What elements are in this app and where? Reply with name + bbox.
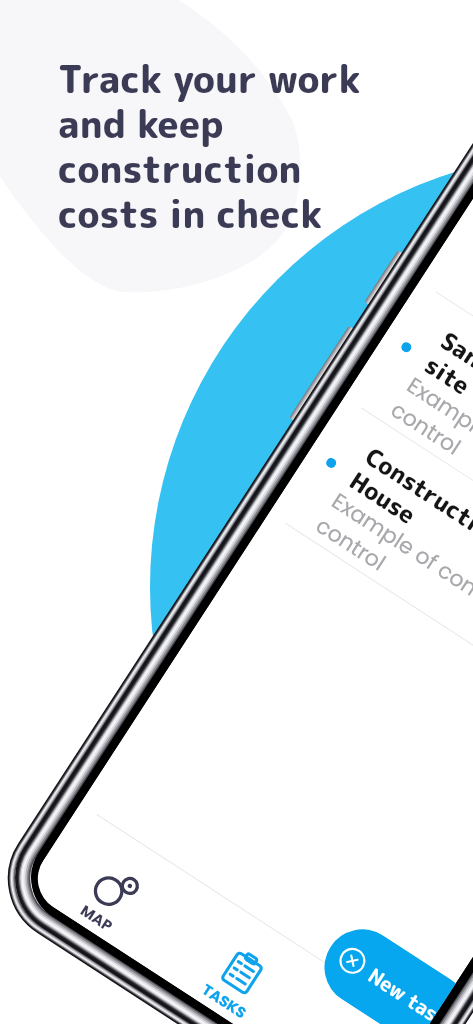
staticText: Example of construction control [386, 370, 473, 564]
button[interactable]: Construction of House [269, 396, 473, 737]
staticText: Sand and gravel site [418, 324, 473, 480]
staticText: Construction of House [343, 439, 473, 597]
staticText: New task [363, 961, 443, 1024]
staticText: MAP [76, 900, 117, 937]
button[interactable]: MAP [52, 847, 164, 954]
button[interactable]: New task [310, 915, 456, 1024]
button[interactable]: Sand and gravel site [344, 281, 473, 621]
staticText: Track your work and keep construction co… [58, 53, 361, 240]
staticText: TASKS [198, 979, 251, 1023]
staticText: Example of construction control [310, 486, 473, 680]
button[interactable]: TASKS [179, 929, 292, 1024]
button[interactable]: CHAT [307, 1012, 410, 1024]
